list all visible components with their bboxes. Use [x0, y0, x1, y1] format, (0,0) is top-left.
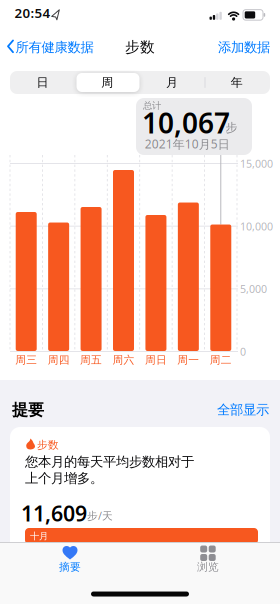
- staticText: 周日: [145, 353, 167, 367]
- staticText: 20:54: [14, 4, 50, 22]
- button[interactable]: 月: [140, 71, 204, 94]
- staticText: 摘要: [59, 560, 81, 574]
- button[interactable]: 周: [75, 71, 139, 94]
- staticText: 2021年10月5日: [145, 136, 230, 152]
- staticText: 周四: [48, 353, 70, 367]
- staticText: 11,609: [21, 499, 87, 527]
- staticText: 年: [231, 75, 243, 90]
- staticText: 日: [36, 75, 48, 90]
- button[interactable]: 所有健康数据: [6, 36, 102, 57]
- staticText: 周三: [15, 353, 37, 367]
- staticText: 十月: [30, 530, 48, 542]
- staticText: 15,000: [240, 156, 273, 171]
- staticText: 上个月增多。: [25, 470, 103, 486]
- staticText: 步数: [125, 38, 155, 56]
- staticText: 所有健康数据: [15, 39, 93, 55]
- staticText: 10,067: [142, 104, 230, 141]
- button[interactable]: 添加数据: [218, 39, 270, 55]
- staticText: 周六: [112, 353, 134, 367]
- staticText: 步数: [37, 438, 59, 452]
- staticText: 您本月的每天平均步数相对于: [25, 453, 194, 470]
- staticText: 周二: [210, 353, 232, 367]
- staticText: 提要: [12, 400, 44, 420]
- staticText: 月: [166, 75, 178, 90]
- staticText: 总计: [143, 100, 161, 111]
- button[interactable]: 摘要: [38, 545, 102, 575]
- staticText: 浏览: [197, 560, 219, 574]
- staticText: 添加数据: [218, 39, 270, 55]
- button[interactable]: 浏览: [176, 545, 240, 575]
- staticText: 全部显示: [217, 401, 269, 418]
- staticText: 5,000: [240, 282, 267, 296]
- button[interactable]: 全部显示: [217, 401, 269, 418]
- staticText: 周一: [177, 353, 199, 367]
- staticText: 周五: [80, 353, 102, 367]
- staticText: 0: [240, 344, 246, 359]
- button[interactable]: 日: [10, 71, 74, 94]
- staticText: 步/天: [87, 508, 113, 523]
- staticText: 步: [225, 120, 237, 135]
- staticText: 周: [101, 75, 113, 90]
- button[interactable]: 年: [205, 71, 269, 94]
- button[interactable]: 步数: [10, 427, 270, 604]
- staticText: 10,000: [240, 219, 273, 233]
